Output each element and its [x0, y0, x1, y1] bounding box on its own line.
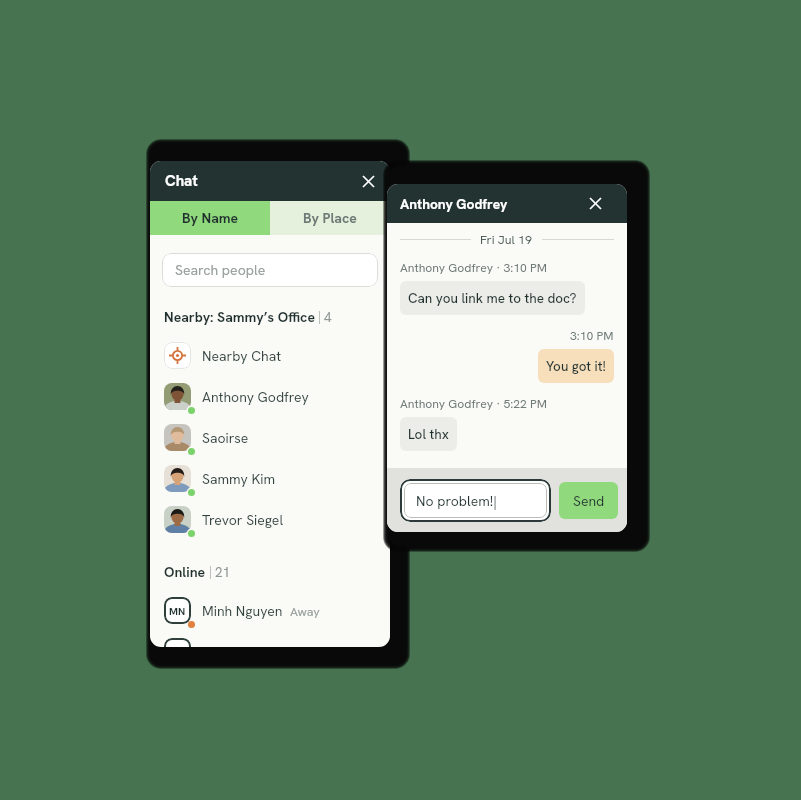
staticText: Minh Nguyen: [202, 602, 283, 620]
staticText: Online: [164, 563, 206, 581]
staticText: MN: [169, 604, 186, 618]
staticText: Anthony Godfrey: [202, 388, 309, 406]
staticText: Sammy Kim: [202, 470, 276, 488]
staticText: Send: [573, 492, 605, 510]
staticText: 4: [324, 308, 332, 326]
button[interactable]: Close chat: [589, 197, 602, 210]
staticText: Away: [290, 603, 320, 619]
staticText: 21: [215, 563, 231, 581]
button[interactable]: Anthony Godfrey: [150, 376, 390, 417]
button[interactable]: Search people: [162, 253, 378, 287]
button[interactable]: MN: [150, 590, 390, 631]
button[interactable]: AM: [150, 631, 390, 647]
staticText: Anthony Godfrey · 5:22 PM: [400, 396, 547, 412]
staticText: Saoirse: [202, 429, 249, 447]
button[interactable]: Trevor Siegel: [150, 499, 390, 540]
staticText: 3:10 PM: [570, 328, 614, 344]
staticText: No problem!|: [416, 492, 497, 510]
staticText: By Place: [303, 209, 357, 227]
button[interactable]: Nearby Chat: [150, 335, 390, 376]
staticText: By Name: [182, 209, 239, 227]
button[interactable]: No problem!|: [400, 479, 551, 522]
button[interactable]: Saoirse: [150, 417, 390, 458]
staticText: Fri Jul 19: [480, 231, 533, 247]
staticText: Nearby Chat: [202, 347, 282, 365]
button[interactable]: Send: [559, 482, 618, 519]
button[interactable]: Close: [362, 175, 375, 188]
button[interactable]: By Name: [150, 201, 270, 235]
staticText: Search people: [175, 261, 266, 279]
staticText: Trevor Siegel: [202, 511, 284, 529]
staticText: You got it!: [546, 357, 606, 375]
staticText: Lol thx: [408, 425, 449, 443]
staticText: Anthony Godfrey · 3:10 PM: [400, 260, 547, 276]
button[interactable]: Sammy Kim: [150, 458, 390, 499]
staticText: Chat: [165, 171, 198, 191]
staticText: Can you link me to the doc?: [408, 289, 577, 307]
button[interactable]: By Place: [270, 201, 390, 235]
staticText: Anthony Godfrey: [400, 195, 508, 213]
staticText: Nearby: Sammy’s Office: [164, 308, 315, 326]
